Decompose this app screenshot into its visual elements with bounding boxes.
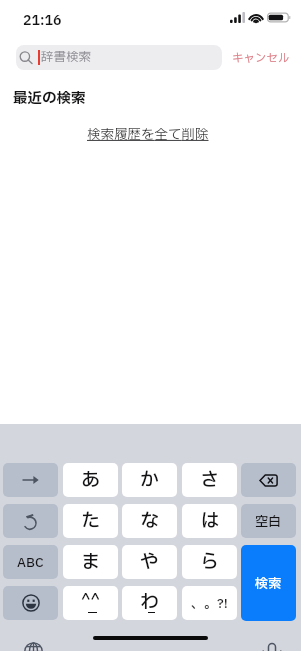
staticText: 、。?!	[191, 594, 228, 613]
button[interactable]: 空白	[241, 504, 296, 538]
staticText: は	[200, 507, 220, 535]
button[interactable]: 最近の検索	[13, 88, 86, 110]
button[interactable]: た	[63, 504, 118, 538]
button[interactable]: わ	[122, 586, 177, 620]
staticText: ABC	[17, 553, 44, 572]
button[interactable]: ま	[63, 545, 118, 579]
button[interactable]: ら	[182, 545, 237, 579]
staticText: あ	[81, 466, 101, 494]
staticText: ら	[200, 548, 220, 576]
button[interactable]: 検索履歴を全て削除	[87, 125, 209, 145]
button[interactable]: 検索	[241, 545, 296, 621]
staticText: 検索	[255, 574, 282, 593]
staticText: 辞書検索	[41, 48, 92, 67]
button[interactable]: な	[122, 504, 177, 538]
staticText: さ	[200, 466, 220, 494]
button[interactable]: Dictation	[261, 640, 283, 651]
staticText: な	[140, 507, 160, 535]
button[interactable]: Next candidate	[3, 463, 58, 497]
button[interactable]: Backspace	[241, 463, 296, 497]
staticText: た	[81, 507, 101, 535]
staticText: 空白	[255, 512, 282, 531]
staticText: 検索履歴を全て削除	[87, 125, 209, 145]
button[interactable]: Emoji	[3, 586, 58, 620]
button[interactable]: Undo	[3, 504, 58, 538]
button[interactable]: さ	[182, 463, 237, 497]
staticText: ^^	[81, 589, 100, 611]
staticText: 最近の検索	[13, 88, 86, 110]
button[interactable]: 、。?!	[182, 586, 237, 620]
button[interactable]: キャンセル	[228, 47, 294, 70]
button[interactable]: は	[182, 504, 237, 538]
button[interactable]: ABC	[3, 545, 58, 579]
staticText: ま	[81, 548, 101, 576]
button[interactable]: ^^	[63, 586, 118, 620]
staticText: わ	[140, 588, 160, 616]
button[interactable]: や	[122, 545, 177, 579]
staticText: や	[140, 548, 160, 576]
staticText: 21:16	[23, 11, 62, 31]
button[interactable]: か	[122, 463, 177, 497]
staticText: か	[140, 466, 160, 494]
button[interactable]: Change keyboard	[24, 642, 43, 651]
button[interactable]: 辞書検索	[16, 45, 222, 70]
button[interactable]: あ	[63, 463, 118, 497]
staticText: キャンセル	[232, 50, 290, 67]
